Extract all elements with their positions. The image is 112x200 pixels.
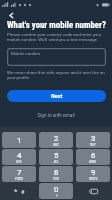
- staticText: *: [14, 187, 18, 196]
- staticText: PQRS: [15, 177, 24, 181]
- staticText: #: [21, 189, 25, 195]
- button[interactable]: Sign in with email: [0, 110, 112, 121]
- staticText: DEF: [90, 143, 96, 147]
- button[interactable]: Back: [2, 9, 20, 22]
- staticText: MNO: [89, 160, 97, 164]
- staticText: We never share this with anyone and it w…: [7, 70, 106, 80]
- staticText: JKL: [53, 160, 59, 164]
- staticText: Please confirm your country code and ent…: [7, 32, 106, 42]
- staticText: Mobile number: [11, 51, 41, 56]
- staticText: 1: [17, 136, 22, 145]
- staticText: 4: [17, 151, 22, 160]
- staticText: TUV: [53, 177, 59, 181]
- button[interactable]: Next: [7, 90, 106, 102]
- staticText: 7: [17, 168, 22, 177]
- button[interactable]: 9: [76, 166, 110, 182]
- staticText: WXYZ: [89, 177, 98, 181]
- staticText: Next: [51, 93, 63, 99]
- staticText: 3: [91, 134, 96, 143]
- button[interactable]: 2: [39, 132, 73, 148]
- button[interactable]: 5: [39, 149, 73, 165]
- button[interactable]: Backspace: [76, 183, 110, 199]
- staticText: What's your mobile number?: [7, 20, 106, 30]
- button[interactable]: 8: [39, 166, 73, 182]
- button[interactable]: 6: [76, 149, 110, 165]
- staticText: +: [56, 194, 58, 198]
- button[interactable]: 1: [2, 132, 36, 148]
- staticText: Sign in with email: [37, 113, 75, 119]
- button[interactable]: 7: [2, 166, 36, 182]
- staticText: 2: [54, 134, 59, 143]
- button[interactable]: 3: [76, 132, 110, 148]
- staticText: 9: [91, 168, 96, 177]
- button[interactable]: Star and pound: [2, 183, 36, 199]
- button[interactable]: 4: [2, 149, 36, 165]
- button[interactable]: 0: [39, 183, 73, 199]
- staticText: 6: [91, 151, 96, 160]
- staticText: ABC: [53, 143, 60, 147]
- staticText: 8: [54, 168, 59, 177]
- staticText: GHI: [16, 160, 22, 164]
- staticText: 0: [54, 185, 59, 194]
- button[interactable]: Mobile number: [7, 48, 106, 66]
- staticText: 5: [54, 151, 59, 160]
